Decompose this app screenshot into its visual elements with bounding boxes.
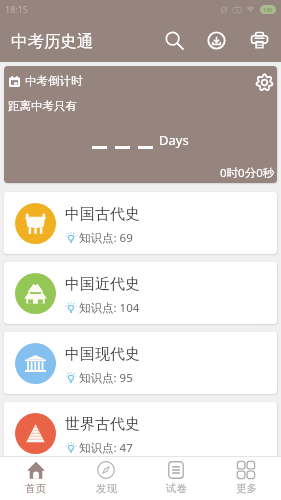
button[interactable]: 世界古代史 xyxy=(4,402,277,464)
button[interactable]: Download xyxy=(195,18,237,62)
staticText: 知识点: 95 xyxy=(79,370,133,386)
button[interactable]: 中国现代史 xyxy=(4,332,277,394)
staticText: 18:15 xyxy=(5,3,29,15)
button[interactable]: Settings xyxy=(252,70,276,94)
staticText: 距离中考只有 xyxy=(8,99,77,113)
staticText: 更多 xyxy=(236,482,257,495)
staticText: 世界古代史 xyxy=(65,415,140,434)
button[interactable]: 发现 xyxy=(71,456,141,500)
staticText: 中考倒计时 xyxy=(25,74,83,88)
button[interactable]: Search xyxy=(153,18,195,62)
staticText: 知识点: 104 xyxy=(79,300,140,316)
staticText: 0时0分0秒 xyxy=(220,165,275,181)
staticText: 知识点: 69 xyxy=(79,230,133,246)
button[interactable]: 试卷 xyxy=(141,456,211,500)
button[interactable]: 中考倒计时 xyxy=(4,66,277,183)
staticText: 首页 xyxy=(25,482,46,495)
staticText: Days xyxy=(159,131,189,149)
staticText: 中国现代史 xyxy=(65,345,140,364)
staticText: 100 xyxy=(263,6,273,13)
button[interactable]: 中国古代史 xyxy=(4,192,277,254)
staticText: 试卷 xyxy=(166,482,187,495)
staticText: 中国近代史 xyxy=(65,275,140,294)
button[interactable]: 中国近代史 xyxy=(4,262,277,324)
button[interactable]: 首页 xyxy=(0,456,71,500)
staticText: 知识点: 47 xyxy=(79,440,133,456)
button[interactable]: Print xyxy=(237,18,281,62)
staticText: 发现 xyxy=(96,482,117,495)
button[interactable]: 更多 xyxy=(211,456,281,500)
staticText: 中考历史通 xyxy=(11,31,94,52)
staticText: 中国古代史 xyxy=(65,205,140,224)
